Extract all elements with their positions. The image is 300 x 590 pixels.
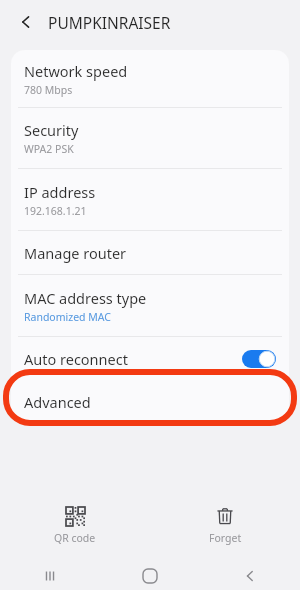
- staticText: QR code: [54, 531, 96, 545]
- button[interactable]: Back: [200, 562, 300, 590]
- staticText: Manage router: [24, 243, 127, 263]
- staticText: Forget: [209, 531, 242, 545]
- button[interactable]: Security: [11, 108, 289, 168]
- staticText: IP address: [24, 182, 96, 202]
- staticText: WPA2 PSK: [24, 142, 74, 156]
- button[interactable]: MAC address type: [11, 275, 289, 336]
- button[interactable]: IP address: [11, 169, 289, 230]
- button[interactable]: QR code: [0, 505, 150, 553]
- staticText: Advanced: [24, 392, 91, 412]
- staticText: 192.168.1.21: [24, 204, 87, 218]
- staticText: Randomized MAC: [24, 310, 111, 324]
- staticText: MAC address type: [24, 288, 147, 308]
- staticText: 780 Mbps: [24, 83, 73, 97]
- button[interactable]: Manage router: [11, 231, 289, 274]
- button[interactable]: Home: [100, 562, 200, 590]
- staticText: Security: [24, 120, 79, 140]
- staticText: Auto reconnect: [24, 349, 242, 369]
- button[interactable]: Advanced: [11, 380, 289, 424]
- button[interactable]: Forget: [150, 505, 300, 553]
- button[interactable]: Auto reconnect: [11, 337, 289, 380]
- button[interactable]: Network speed: [11, 50, 289, 107]
- button[interactable]: Back: [10, 6, 42, 38]
- staticText: Network speed: [24, 61, 128, 81]
- button[interactable]: Recent apps: [0, 562, 100, 590]
- staticText: PUMPKINRAISER: [48, 12, 171, 33]
